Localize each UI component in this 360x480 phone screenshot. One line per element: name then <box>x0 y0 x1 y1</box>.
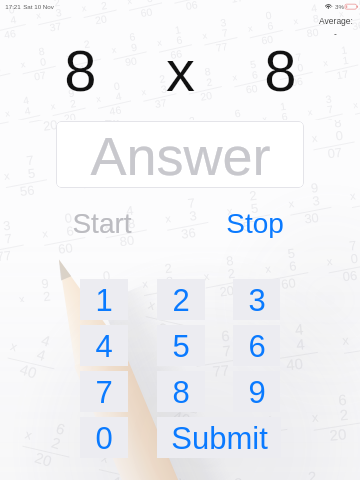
staticText: 8 <box>172 375 190 410</box>
staticText: x <box>166 38 195 96</box>
button[interactable]: 5 <box>157 325 205 366</box>
button[interactable]: 8 <box>157 371 205 412</box>
staticText: Submit <box>171 421 268 456</box>
button[interactable]: 0 <box>80 417 128 458</box>
button[interactable]: Answer <box>56 121 304 188</box>
staticText: 5 <box>172 329 190 364</box>
staticText: 4 <box>95 329 113 364</box>
staticText: 1 <box>95 283 113 318</box>
button[interactable]: 2 <box>157 279 205 320</box>
staticText: 9 <box>248 375 266 410</box>
staticText: 3% <box>335 3 344 10</box>
staticText: 2 <box>172 283 190 318</box>
staticText: 8 <box>264 38 297 96</box>
button[interactable]: 4 <box>80 325 128 366</box>
button[interactable]: 1 <box>80 279 128 320</box>
staticText: - <box>334 29 337 38</box>
button[interactable]: 7 <box>80 371 128 412</box>
staticText: 6 <box>248 329 266 364</box>
staticText: Stop <box>226 208 284 238</box>
staticText: Average: <box>319 16 353 25</box>
staticText: 3 <box>248 283 266 318</box>
button[interactable]: 9 <box>233 371 280 412</box>
other: Wi-Fi and battery status <box>324 1 358 12</box>
staticText: 0 <box>95 421 113 456</box>
button[interactable]: 3 <box>233 279 280 320</box>
staticText: 7 <box>95 375 113 410</box>
staticText: Answer <box>90 126 271 186</box>
button[interactable]: Stop <box>215 208 295 238</box>
button[interactable]: 6 <box>233 325 280 366</box>
staticText: Start <box>72 208 132 238</box>
button[interactable]: Start <box>62 208 142 238</box>
staticText: 8 <box>64 38 97 96</box>
button[interactable]: Submit <box>157 417 281 458</box>
staticText: 17:21 <box>5 3 21 10</box>
staticText: Sat 10 Nov <box>23 3 54 10</box>
